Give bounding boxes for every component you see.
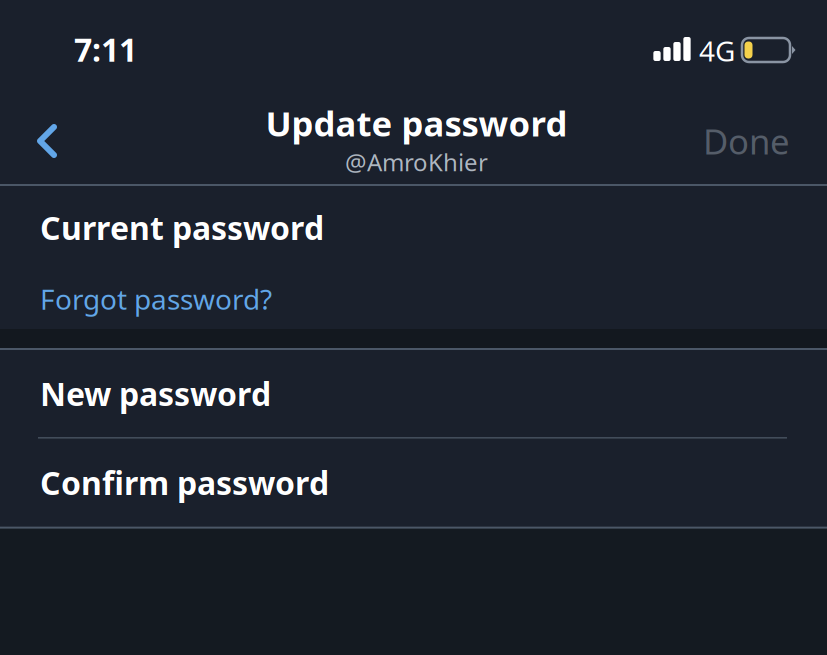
staticText: New password: [40, 372, 271, 415]
button[interactable]: Forgot password?: [0, 269, 827, 329]
staticText: Forgot password?: [40, 280, 272, 318]
staticText: Update password: [265, 100, 567, 146]
button[interactable]: Confirm password: [0, 439, 827, 527]
staticText: Done: [703, 118, 790, 164]
staticText: 4G: [699, 32, 735, 69]
staticText: 7:11: [74, 28, 137, 70]
staticText: Current password: [40, 206, 324, 249]
staticText: Confirm password: [40, 461, 329, 504]
button[interactable]: New password: [0, 350, 827, 437]
button[interactable]: Current password: [0, 186, 827, 269]
button[interactable]: Back: [0, 90, 110, 184]
button[interactable]: Done: [703, 90, 827, 184]
staticText: @AmroKhier: [345, 146, 488, 178]
